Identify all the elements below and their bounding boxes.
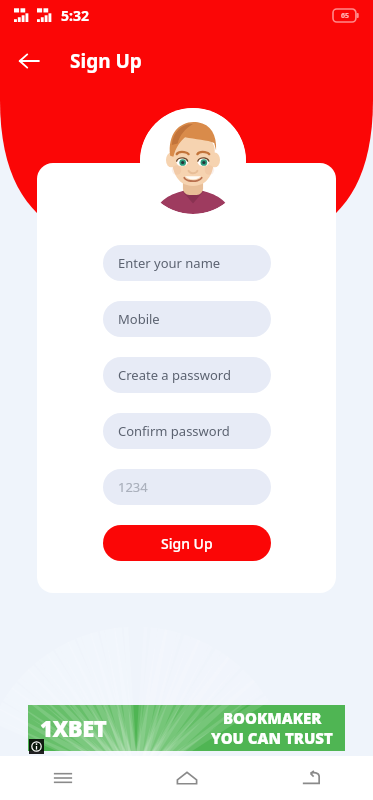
button[interactable]: Back: [249, 756, 373, 800]
button[interactable]: Recent apps: [0, 756, 125, 800]
button[interactable]: Mobile: [103, 301, 271, 337]
staticText: Mobile: [118, 310, 160, 328]
button[interactable]: Back: [10, 42, 48, 80]
button[interactable]: Home: [125, 756, 249, 800]
staticText: Sign Up: [70, 48, 142, 74]
button[interactable]: Profile photo: [140, 108, 246, 214]
staticText: Sign Up: [161, 534, 213, 553]
button[interactable]: 1XBET: [28, 705, 345, 751]
button[interactable]: Confirm password: [103, 413, 271, 449]
button[interactable]: Sign Up: [103, 525, 271, 561]
staticText: YOU CAN TRUST: [211, 728, 333, 748]
staticText: BOOKMAKER: [223, 708, 322, 728]
button[interactable]: 1234: [103, 469, 271, 505]
staticText: 65: [341, 11, 350, 21]
staticText: Confirm password: [118, 422, 230, 440]
staticText: 5:32: [61, 6, 89, 25]
staticText: Enter your name: [118, 254, 221, 272]
staticText: 1XBET: [40, 713, 107, 743]
button[interactable]: Create a password: [103, 357, 271, 393]
button[interactable]: Enter your name: [103, 245, 271, 281]
staticText: 1234: [118, 478, 148, 496]
staticText: Create a password: [118, 366, 231, 384]
button[interactable]: Ad info: [29, 739, 44, 754]
